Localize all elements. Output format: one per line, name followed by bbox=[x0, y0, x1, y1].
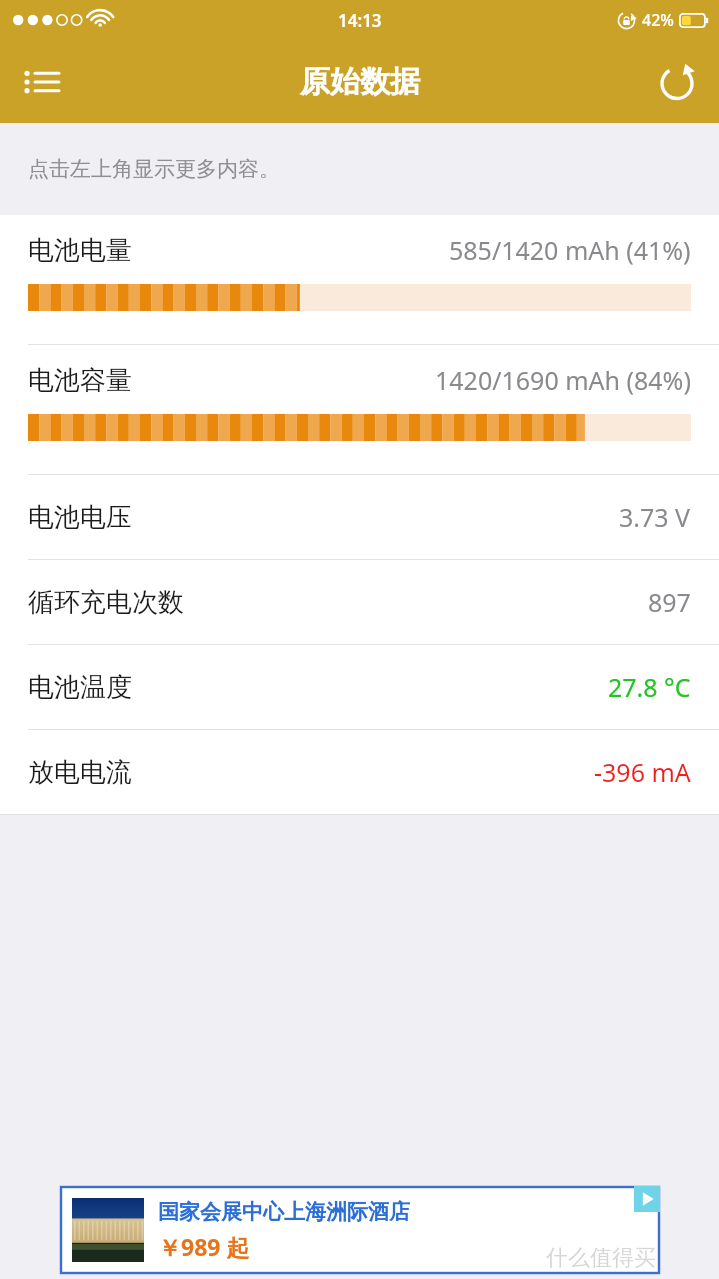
staticText: 3.73 V bbox=[619, 500, 691, 534]
button[interactable]: Menu bbox=[14, 54, 70, 110]
button[interactable]: 循环充电次数 bbox=[0, 560, 719, 644]
staticText: 电池容量 bbox=[28, 364, 132, 397]
staticText: 电池电压 bbox=[28, 501, 132, 534]
button[interactable]: 电池容量 bbox=[0, 345, 719, 474]
button[interactable]: 电池电压 bbox=[0, 475, 719, 559]
staticText: 42% bbox=[642, 9, 674, 31]
staticText: 电池电量 bbox=[28, 234, 132, 267]
button[interactable]: Advertisement bbox=[60, 1186, 660, 1274]
staticText: 585/1420 mAh (41%) bbox=[449, 233, 691, 267]
staticText: -396 mA bbox=[594, 755, 691, 789]
staticText: 27.8 °C bbox=[608, 670, 691, 704]
staticText: 国家会展中心上海洲际酒店 bbox=[158, 1199, 410, 1225]
button[interactable]: Refresh bbox=[649, 54, 705, 110]
staticText: 放电电流 bbox=[28, 756, 132, 789]
staticText: 循环充电次数 bbox=[28, 586, 184, 619]
button[interactable]: 电池电量 bbox=[0, 215, 719, 344]
staticText: 原始数据 bbox=[300, 63, 420, 101]
staticText: 14:13 bbox=[338, 9, 382, 32]
staticText: 897 bbox=[648, 585, 691, 619]
staticText: 点击左上角显示更多内容。 bbox=[28, 156, 280, 182]
staticText: 电池温度 bbox=[28, 671, 132, 704]
staticText: 1420/1690 mAh (84%) bbox=[435, 363, 691, 397]
staticText: 什么值得买 bbox=[546, 1244, 656, 1272]
button[interactable]: 放电电流 bbox=[0, 730, 719, 814]
button[interactable]: 电池温度 bbox=[0, 645, 719, 729]
staticText: ￥989 起 bbox=[158, 1231, 250, 1262]
